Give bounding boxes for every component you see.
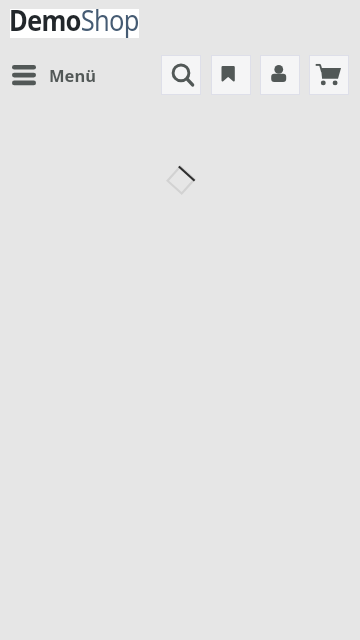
button[interactable]: Bookmarks	[211, 55, 251, 95]
staticText: DemoShop	[9, 0, 139, 39]
button[interactable]: Cart	[309, 55, 349, 95]
button[interactable]: Search	[161, 55, 201, 95]
button[interactable]: Menü	[12, 60, 96, 86]
staticText: Menü	[49, 64, 96, 86]
button[interactable]: DemoShop	[10, 9, 139, 38]
button[interactable]: Account	[260, 55, 300, 95]
